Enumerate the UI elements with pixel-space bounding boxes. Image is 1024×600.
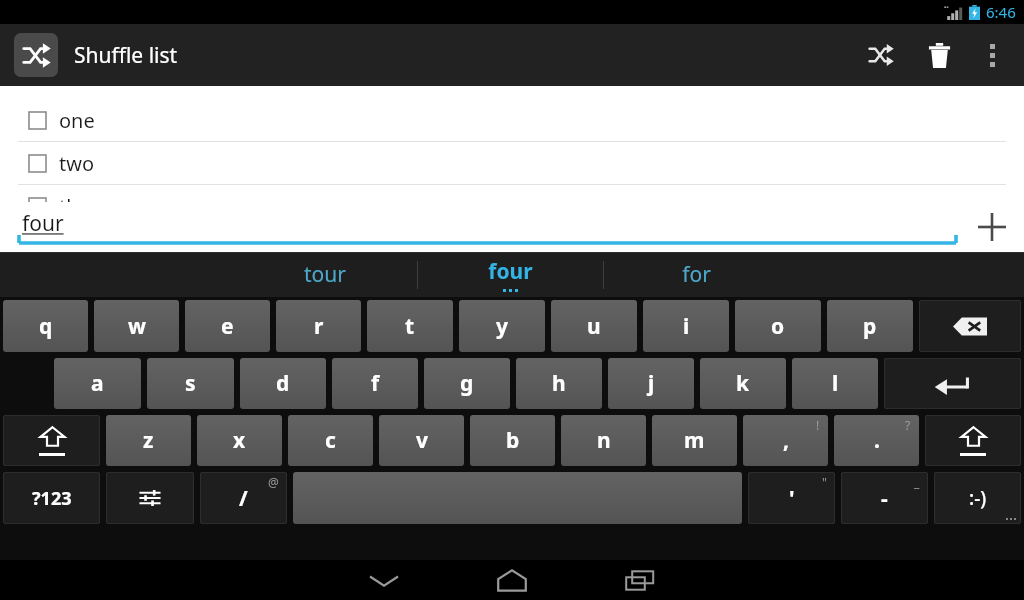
staticText: h — [552, 369, 566, 398]
button[interactable]: i — [643, 300, 729, 352]
button[interactable]: o — [735, 300, 821, 352]
staticText: - — [881, 484, 888, 513]
staticText: two — [59, 150, 95, 177]
staticText: r — [314, 312, 324, 341]
staticText: , — [783, 426, 789, 455]
staticText: f — [371, 369, 380, 398]
staticText: tour — [304, 260, 346, 289]
button[interactable]: Recent apps — [576, 560, 704, 600]
button[interactable]: z — [106, 415, 191, 466]
button[interactable]: e — [185, 300, 270, 352]
button[interactable]: f — [332, 358, 418, 409]
staticText: / — [239, 484, 248, 513]
button[interactable]: Shift — [3, 415, 100, 466]
button[interactable]: ' — [748, 472, 835, 524]
button[interactable]: q — [3, 300, 88, 352]
button[interactable]: h — [516, 358, 602, 409]
button[interactable]: u — [551, 300, 637, 352]
button[interactable]: t — [367, 300, 453, 352]
staticText: w — [128, 312, 146, 341]
button[interactable]: x — [197, 415, 282, 466]
staticText: u — [587, 312, 601, 341]
button[interactable]: More options — [968, 24, 1016, 86]
staticText: four — [488, 257, 533, 286]
button[interactable]: Hide keyboard — [320, 560, 448, 600]
button[interactable]: v — [379, 415, 464, 466]
button[interactable]: n — [561, 415, 646, 466]
staticText: p — [863, 312, 877, 341]
staticText: ! — [816, 417, 820, 433]
button[interactable]: Shuffle — [852, 24, 910, 86]
button[interactable]: Shift — [925, 415, 1021, 466]
staticText: _ — [914, 474, 920, 490]
staticText: y — [496, 312, 508, 341]
staticText: m — [684, 426, 705, 455]
button[interactable]: . — [834, 415, 919, 466]
button[interactable]: , — [743, 415, 828, 466]
staticText: s — [185, 369, 196, 398]
staticText: b — [506, 426, 520, 455]
staticText: c — [325, 426, 336, 455]
staticText: ? — [905, 417, 911, 433]
button[interactable]: j — [608, 358, 694, 409]
button[interactable]: p — [827, 300, 913, 352]
staticText: " — [822, 474, 827, 490]
button[interactable]: four — [418, 252, 603, 297]
staticText: Shuffle list — [74, 41, 178, 70]
button[interactable]: Enter — [884, 358, 1021, 409]
staticText: one — [59, 107, 95, 134]
button[interactable]: Home — [448, 560, 576, 600]
staticText: g — [460, 369, 474, 398]
staticText: i — [683, 312, 690, 341]
staticText: ' — [789, 484, 795, 513]
button[interactable]: three — [0, 185, 1024, 228]
button[interactable]: Keyboard settings — [106, 472, 194, 524]
button[interactable]: one — [0, 99, 1024, 142]
staticText: four — [22, 209, 64, 238]
button[interactable]: Space — [293, 472, 742, 524]
staticText: x — [233, 426, 246, 455]
button[interactable]: tour — [232, 252, 417, 297]
staticText: k — [736, 369, 750, 398]
button[interactable]: b — [470, 415, 555, 466]
button[interactable]: for — [604, 252, 789, 297]
staticText: l — [832, 369, 839, 398]
staticText: q — [39, 312, 53, 341]
staticText: @ — [268, 474, 279, 490]
button[interactable]: l — [792, 358, 878, 409]
staticText: 6:46 — [986, 2, 1016, 22]
staticText: e — [221, 312, 234, 341]
staticText: o — [771, 312, 785, 341]
button[interactable]: / — [200, 472, 287, 524]
button[interactable]: a — [54, 358, 141, 409]
staticText: for — [682, 260, 711, 289]
button[interactable]: Delete — [910, 24, 968, 86]
staticText: n — [597, 426, 611, 455]
button[interactable]: c — [288, 415, 373, 466]
button[interactable]: s — [147, 358, 234, 409]
button[interactable]: d — [240, 358, 326, 409]
staticText: v — [416, 426, 428, 455]
staticText: t — [405, 312, 415, 341]
button[interactable]: two — [0, 142, 1024, 185]
button[interactable]: Backspace — [919, 300, 1021, 352]
button[interactable]: r — [276, 300, 361, 352]
staticText: z — [143, 426, 154, 455]
button[interactable]: w — [94, 300, 179, 352]
staticText: :-) — [969, 485, 987, 511]
button[interactable]: Emoji — [934, 472, 1021, 524]
button[interactable]: Add item — [960, 202, 1024, 252]
button[interactable]: - — [841, 472, 928, 524]
button[interactable]: four — [0, 202, 960, 252]
button[interactable]: ?123 — [3, 472, 100, 524]
button[interactable]: k — [700, 358, 786, 409]
staticText: j — [648, 369, 655, 398]
button[interactable]: g — [424, 358, 510, 409]
button[interactable]: m — [652, 415, 737, 466]
staticText: ?123 — [32, 486, 72, 511]
staticText: . — [874, 426, 880, 455]
staticText: a — [91, 369, 104, 398]
staticText: d — [276, 369, 290, 398]
button[interactable]: y — [459, 300, 545, 352]
button[interactable] — [14, 33, 58, 77]
